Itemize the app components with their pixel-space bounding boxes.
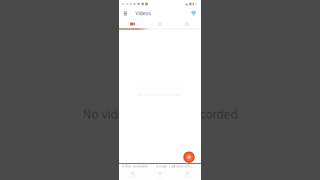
button[interactable]: Menu bbox=[122, 9, 128, 18]
staticText: No video has been recorded bbox=[82, 105, 237, 124]
button[interactable]: Videos tab bbox=[119, 19, 146, 28]
button[interactable]: Files tab bbox=[174, 19, 201, 28]
button[interactable]: Record bbox=[183, 151, 195, 163]
button[interactable]: Premium bbox=[190, 9, 198, 18]
staticText: 0 files available bbox=[122, 164, 148, 169]
staticText: 0.0 GB Last Sync 09/10/21 bbox=[156, 164, 196, 169]
staticText: Videos bbox=[135, 9, 150, 18]
button[interactable]: Photos tab bbox=[146, 19, 174, 28]
staticText: No video has been recorded bbox=[138, 92, 182, 97]
